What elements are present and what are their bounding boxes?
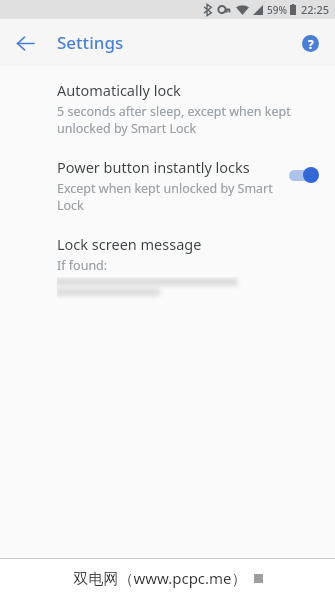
staticText: Lock	[57, 197, 84, 214]
staticText: 59%	[267, 3, 287, 17]
button[interactable]: Back	[6, 24, 44, 62]
button[interactable]: Power button instantly locks toggle	[283, 164, 323, 186]
button[interactable]: Lock screen message	[0, 232, 335, 301]
staticText: Settings	[57, 31, 124, 54]
staticText: 22:25	[301, 2, 330, 17]
staticText: 双电网（www.pcpc.me）	[73, 568, 247, 588]
button[interactable]: Power button instantly locks	[0, 155, 335, 216]
staticText: If found:	[57, 257, 108, 274]
staticText: Automatically lock	[57, 80, 181, 100]
staticText: unlocked by Smart Lock	[57, 120, 197, 137]
staticText: 5 seconds after sleep, except when kept	[57, 103, 291, 120]
button[interactable]: Automatically lock	[0, 78, 335, 139]
staticText: ?	[308, 36, 314, 52]
staticText: Except when kept unlocked by Smart	[57, 180, 273, 197]
button[interactable]: Help	[293, 26, 327, 60]
staticText: Power button instantly locks	[57, 157, 250, 177]
staticText: Lock screen message	[57, 234, 202, 254]
